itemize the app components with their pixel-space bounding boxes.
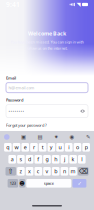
- button[interactable]: j: [61, 155, 68, 164]
- staticText: follow us on the internet.: [26, 46, 67, 51]
- staticText: w: [14, 144, 18, 151]
- button[interactable]: q: [4, 143, 12, 152]
- staticText: ◥: [76, 1, 80, 8]
- staticText: m: [71, 168, 76, 175]
- staticText: v: [45, 168, 48, 175]
- staticText: r: [33, 144, 35, 151]
- staticText: ✓: [77, 180, 81, 186]
- staticText: ◉: [69, 134, 74, 140]
- button[interactable]: o: [74, 143, 81, 152]
- button[interactable]: c: [34, 167, 42, 176]
- button[interactable]: Forgot your password ?: [6, 118, 47, 127]
- staticText: You have been missed. You can sign in wi…: [10, 39, 83, 45]
- button[interactable]: r: [30, 143, 38, 152]
- staticText: hi@email.com: [9, 85, 35, 90]
- button[interactable]: s: [17, 155, 25, 164]
- staticText: t: [42, 144, 44, 151]
- staticText: b: [54, 168, 57, 175]
- staticText: g: [45, 156, 48, 163]
- button[interactable]: y: [47, 143, 55, 152]
- staticText: ▣: [21, 134, 26, 140]
- button[interactable]: x: [26, 167, 33, 176]
- staticText: f: [37, 156, 39, 163]
- button[interactable]: b: [52, 167, 59, 176]
- button[interactable]: ⌫: [78, 167, 88, 176]
- button[interactable]: ☻: [19, 179, 25, 188]
- button[interactable]: i: [65, 143, 73, 152]
- staticText: i: [68, 144, 69, 151]
- staticText: ⇧: [8, 167, 14, 175]
- button[interactable]: e: [21, 143, 29, 152]
- button[interactable]: 123: [8, 179, 18, 188]
- button[interactable]: ✓: [72, 179, 86, 188]
- staticText: k: [72, 156, 75, 163]
- button[interactable]: Show password: [80, 108, 85, 114]
- button[interactable]: v: [43, 167, 51, 176]
- button[interactable]: u: [56, 143, 64, 152]
- button[interactable]: g: [43, 155, 51, 164]
- button[interactable]: f: [34, 155, 42, 164]
- staticText: Forgot your password ?: [6, 122, 47, 128]
- button[interactable]: w: [13, 143, 20, 152]
- button[interactable]: l: [78, 155, 86, 164]
- button[interactable]: h: [52, 155, 59, 164]
- staticText: z: [19, 168, 22, 175]
- staticText: ✷: [54, 134, 58, 140]
- staticText: space: [44, 181, 54, 186]
- staticText: y: [50, 144, 53, 151]
- staticText: q: [6, 144, 9, 151]
- staticText: u: [58, 144, 61, 151]
- button[interactable]: p: [82, 143, 90, 152]
- button[interactable]: k: [69, 155, 77, 164]
- button[interactable]: d: [26, 155, 33, 164]
- button[interactable]: n: [61, 167, 68, 176]
- staticText: 9:41: [6, 0, 20, 9]
- staticText: x: [28, 168, 31, 175]
- staticText: Password: [6, 97, 24, 103]
- button[interactable]: a: [8, 155, 16, 164]
- button[interactable]: ⇧: [5, 167, 16, 176]
- staticText: s: [19, 156, 22, 163]
- staticText: p: [85, 144, 88, 151]
- staticText: ☻: [19, 180, 25, 186]
- staticText: d: [28, 156, 31, 163]
- staticText: ▤: [38, 134, 43, 140]
- staticText: o: [76, 144, 79, 151]
- staticText: l: [81, 156, 82, 163]
- staticText: a: [11, 156, 14, 163]
- staticText: Welcome Back: [28, 30, 66, 37]
- staticText: j: [64, 156, 65, 163]
- staticText: e: [24, 144, 27, 151]
- staticText: c: [37, 168, 40, 175]
- staticText: 123: [10, 181, 16, 186]
- button[interactable]: space: [26, 179, 71, 188]
- staticText: ✎: [86, 134, 90, 140]
- button[interactable]: m: [69, 167, 77, 176]
- staticText: ⌫: [79, 167, 88, 175]
- staticText: h: [54, 156, 57, 163]
- staticText: n: [63, 168, 66, 175]
- staticText: Email: [6, 75, 16, 81]
- staticText: ••••••••: [9, 108, 25, 114]
- button[interactable]: z: [17, 167, 25, 176]
- button[interactable]: t: [39, 143, 46, 152]
